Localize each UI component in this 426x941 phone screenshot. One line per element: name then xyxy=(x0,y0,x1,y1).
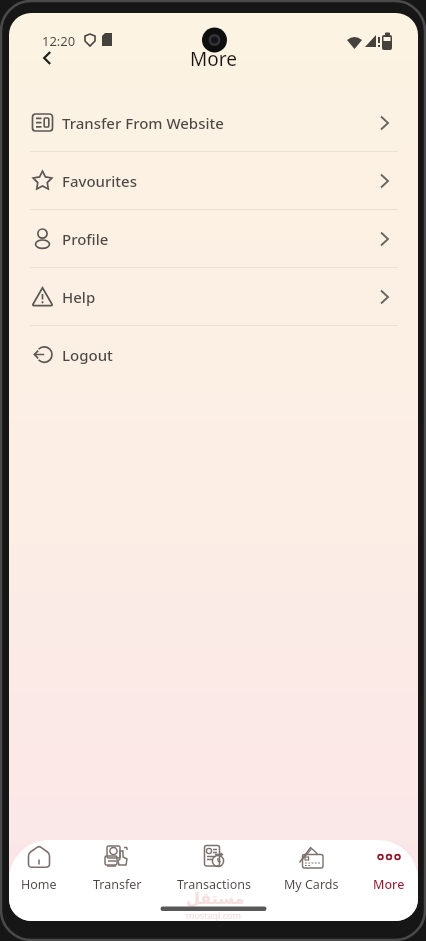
staticText: More xyxy=(190,46,237,72)
button[interactable]: Profile xyxy=(9,210,418,267)
staticText: Help xyxy=(62,287,96,307)
button[interactable]: Favourites xyxy=(9,152,418,209)
staticText: Favourites xyxy=(62,171,138,191)
staticText: mostaql.com xyxy=(186,909,241,921)
staticText: Transfer From Website xyxy=(62,113,224,133)
staticText: My Cards xyxy=(284,876,339,893)
button[interactable]: More xyxy=(339,840,418,900)
button[interactable]: Transfer From Website xyxy=(9,94,418,151)
staticText: 12:20 xyxy=(42,32,76,50)
button[interactable]: My Cards xyxy=(261,840,361,900)
button[interactable] xyxy=(33,44,61,72)
button[interactable]: Transactions xyxy=(164,840,264,900)
button[interactable]: Transfer xyxy=(67,840,167,900)
staticText: مستقل xyxy=(186,889,245,908)
staticText: Home xyxy=(21,876,57,893)
button[interactable]: Help xyxy=(9,268,418,325)
staticText: More xyxy=(373,876,405,893)
staticText: Logout xyxy=(62,345,113,365)
staticText: Profile xyxy=(62,229,109,249)
staticText: Transfer xyxy=(93,876,142,893)
button[interactable]: Logout xyxy=(9,326,418,383)
staticText: Transactions xyxy=(177,876,251,893)
button[interactable]: Home xyxy=(9,840,89,900)
